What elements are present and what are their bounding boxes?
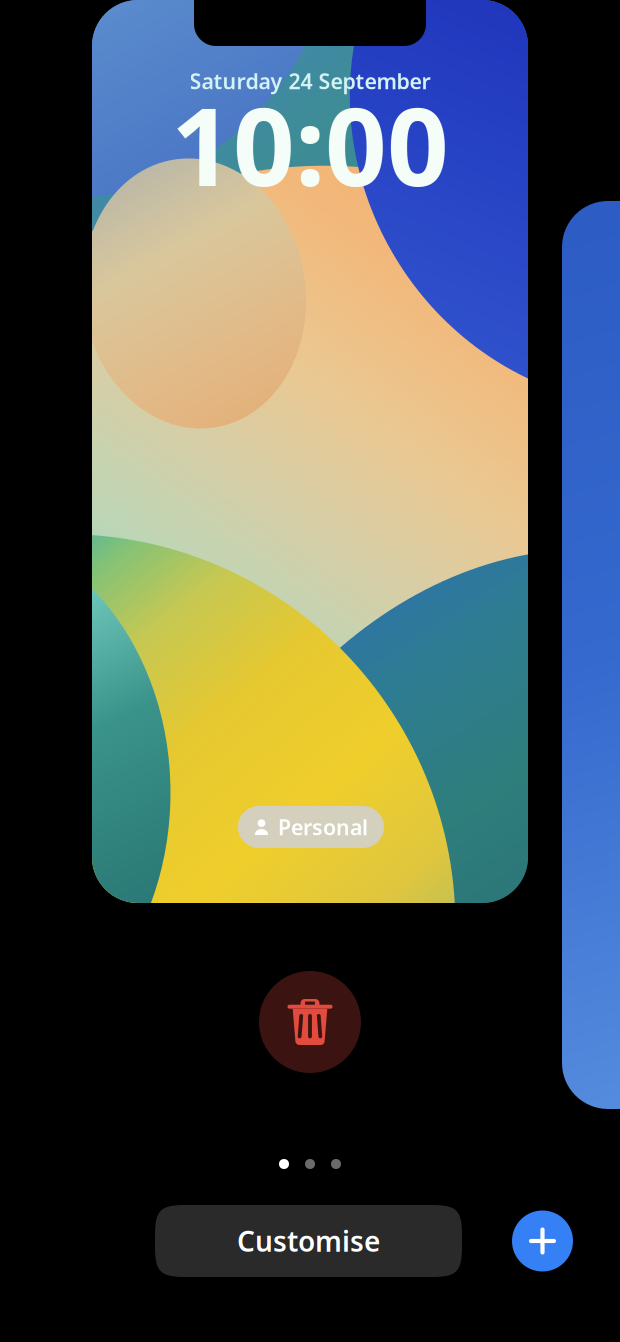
button[interactable]: Next wallpaper [562,201,620,1109]
button[interactable]: Add wallpaper [512,1210,573,1271]
staticText: 10:00 [171,72,449,216]
staticText: Customise [237,1222,380,1260]
button[interactable]: Personal Lock Screen, 10:00 Saturday 24 … [92,0,528,903]
staticText: Personal [278,813,368,841]
staticText: Saturday 24 September [189,67,430,95]
button[interactable]: Customise [155,1205,462,1277]
button[interactable]: Delete wallpaper [259,971,361,1073]
